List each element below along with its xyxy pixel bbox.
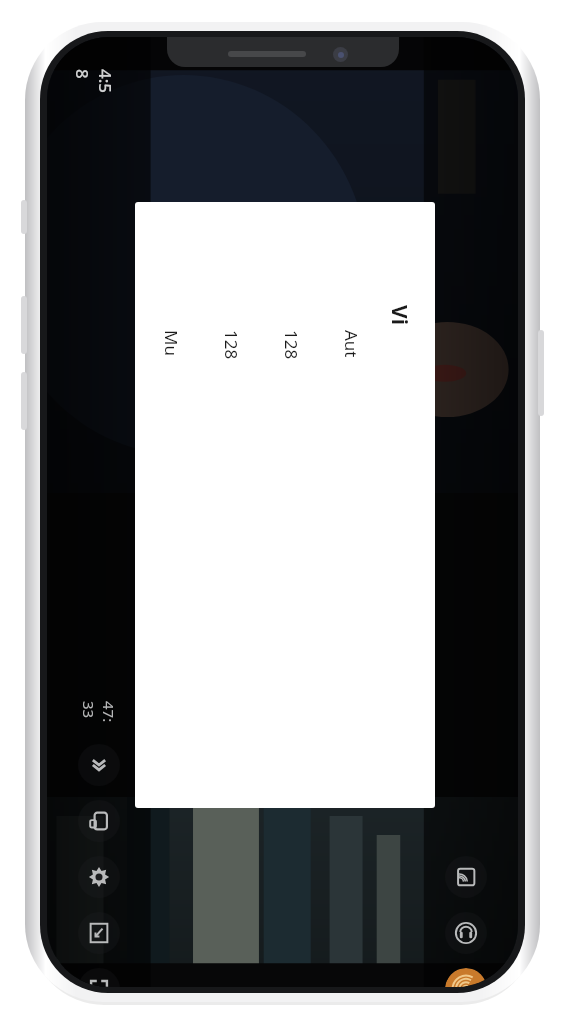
button[interactable]: Audio track bbox=[445, 912, 487, 954]
button[interactable]: 1280x720 @ 30fps bbox=[277, 230, 307, 460]
button[interactable]: Profile bbox=[445, 968, 487, 987]
button[interactable]: Video Quality bbox=[385, 230, 415, 410]
staticText: 1280x720 @ 30fps bbox=[280, 330, 303, 360]
staticText: 4:58 bbox=[71, 69, 117, 95]
staticText: Auto (Recommended) bbox=[340, 330, 363, 360]
staticText: Multiple Selection bbox=[160, 330, 183, 360]
staticText: 47:33 bbox=[79, 701, 119, 729]
button[interactable]: Settings bbox=[78, 856, 120, 898]
button[interactable]: Fit to screen bbox=[78, 912, 120, 954]
button[interactable]: Multiple Selection bbox=[157, 230, 187, 460]
staticText: Video Quality bbox=[385, 305, 414, 335]
staticText: 1280x720 bbox=[220, 330, 243, 360]
button[interactable]: Auto (Recommended) bbox=[337, 230, 367, 460]
button[interactable]: Fullscreen bbox=[78, 968, 120, 987]
button[interactable]: Cast to device bbox=[445, 856, 487, 898]
button[interactable]: Skip forward bbox=[78, 744, 120, 786]
button[interactable]: Rotation lock bbox=[78, 800, 120, 842]
button[interactable]: 1280x720 bbox=[217, 230, 247, 460]
